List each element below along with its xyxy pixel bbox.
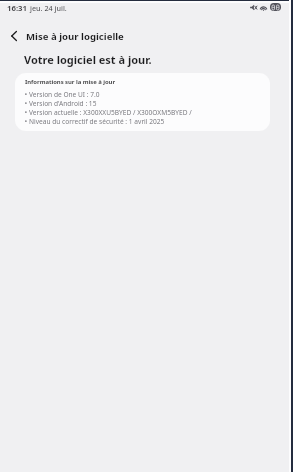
staticText: Version d'Android : 15 — [29, 99, 97, 108]
staticText: Niveau du correctif de sécurité : 1 avri… — [29, 117, 165, 126]
staticText: Version actuelle : X300XXU5BYED / X300OX… — [29, 108, 192, 117]
staticText: Version de One UI : 7.0 — [29, 90, 100, 99]
button[interactable]: Retour — [2, 25, 26, 47]
staticText: Informations sur la mise à jour — [25, 78, 116, 86]
staticText: jeu. 24 juil. — [30, 3, 67, 13]
staticText: 16:31 — [7, 3, 28, 14]
staticText: Votre logiciel est à jour. — [24, 52, 152, 67]
staticText: Mise à jour logicielle — [26, 30, 124, 43]
